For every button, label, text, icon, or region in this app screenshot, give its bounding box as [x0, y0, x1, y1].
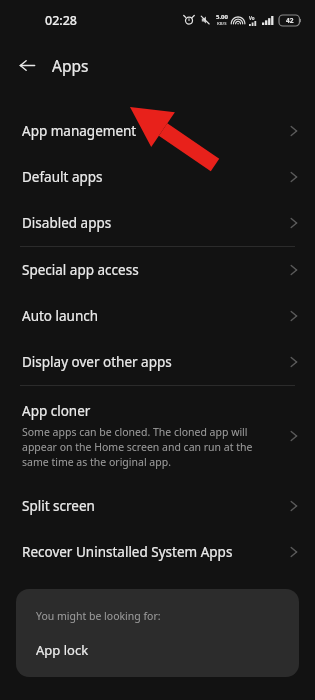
button[interactable]: App lock [16, 639, 299, 677]
staticText: Auto launch [22, 307, 99, 325]
staticText: Apps [52, 55, 89, 76]
staticText: Default apps [22, 168, 103, 186]
staticText: App cloner [22, 402, 91, 420]
staticText: Vo [249, 15, 255, 21]
staticText: Recover Uninstalled System Apps [22, 543, 233, 561]
staticText: Special app access [22, 261, 139, 279]
staticText: Display over other apps [22, 353, 172, 371]
button[interactable]: Split screen [0, 483, 315, 529]
staticText: 42 [286, 16, 294, 25]
button[interactable]: Back [13, 51, 41, 79]
button[interactable]: Special app access [0, 247, 315, 293]
button[interactable]: App management [0, 108, 315, 154]
button[interactable]: Auto launch [0, 293, 315, 339]
button[interactable]: Display over other apps [0, 339, 315, 385]
staticText: 02:28 [45, 12, 78, 29]
staticText: Some apps can be cloned. The cloned app … [22, 425, 281, 469]
staticText: Split screen [22, 497, 95, 515]
staticText: Disabled apps [22, 214, 112, 232]
button[interactable]: Default apps [0, 154, 315, 200]
staticText: 5.00 [216, 13, 228, 21]
button[interactable]: Recover Uninstalled System Apps [0, 529, 315, 575]
staticText: You might be looking for: [36, 609, 161, 623]
staticText: App lock [36, 641, 89, 659]
button[interactable]: App cloner [0, 386, 315, 483]
staticText: App management [22, 122, 137, 140]
staticText: KB/S [217, 21, 227, 27]
button[interactable]: Disabled apps [0, 200, 315, 246]
